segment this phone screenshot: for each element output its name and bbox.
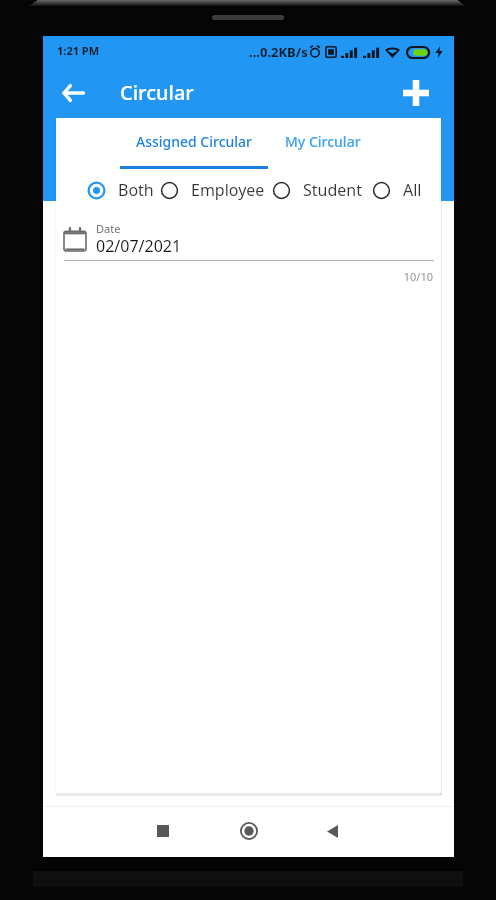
button[interactable]: Assigned Circular [120, 118, 268, 166]
button[interactable]: Recent apps [141, 809, 185, 853]
staticText: Both [118, 179, 154, 201]
staticText: 02/07/2021 [96, 235, 182, 257]
button[interactable]: Home [227, 809, 271, 853]
button[interactable]: Back [52, 72, 94, 114]
button[interactable]: My Circular [268, 118, 378, 166]
staticText: ...0.2KB/s [249, 43, 308, 61]
staticText: 10/10 [56, 269, 433, 284]
button[interactable]: Both [87, 175, 154, 205]
staticText: Date [96, 221, 121, 236]
button[interactable]: Back [310, 809, 354, 853]
button[interactable]: All [372, 175, 422, 205]
staticText: Circular [120, 79, 194, 106]
button[interactable]: Add circular [396, 73, 436, 113]
button[interactable]: Date [62, 216, 437, 262]
staticText: Employee [191, 179, 265, 201]
staticText: My Circular [285, 132, 361, 151]
staticText: Student [303, 179, 362, 201]
button[interactable]: Employee [160, 175, 265, 205]
button[interactable]: Student [272, 175, 362, 205]
staticText: 1:21 PM [57, 43, 100, 58]
staticText: All [403, 179, 422, 201]
staticText: Assigned Circular [136, 132, 253, 151]
